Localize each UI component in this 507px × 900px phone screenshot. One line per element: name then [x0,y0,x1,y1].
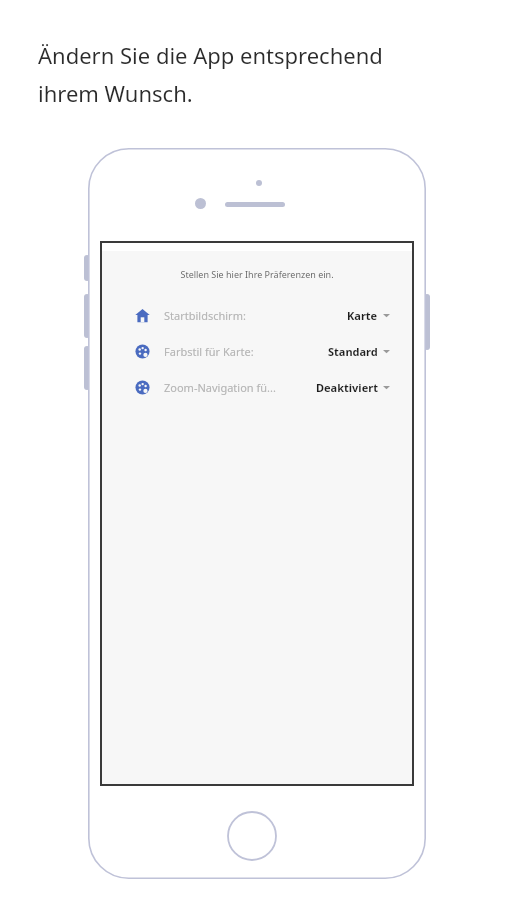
staticText: Deaktiviert [316,380,378,395]
staticText: Farbstil für Karte: [164,344,254,359]
button[interactable]: Home [227,811,277,861]
button[interactable]: Zoom-Navigation fü... [102,369,412,405]
staticText: Stellen Sie hier Ihre Präferenzen ein. [102,268,412,280]
staticText: Standard [328,344,378,359]
staticText: Zoom-Navigation fü... [164,380,276,395]
button[interactable]: Farbstil für Karte: [102,333,412,369]
staticText: Karte [347,308,378,323]
button[interactable]: Startbildschirm: [102,297,412,333]
staticText: Startbildschirm: [164,308,246,323]
staticText: ihrem Wunsch. [38,78,193,108]
staticText: Ändern Sie die App entsprechend [38,40,383,70]
